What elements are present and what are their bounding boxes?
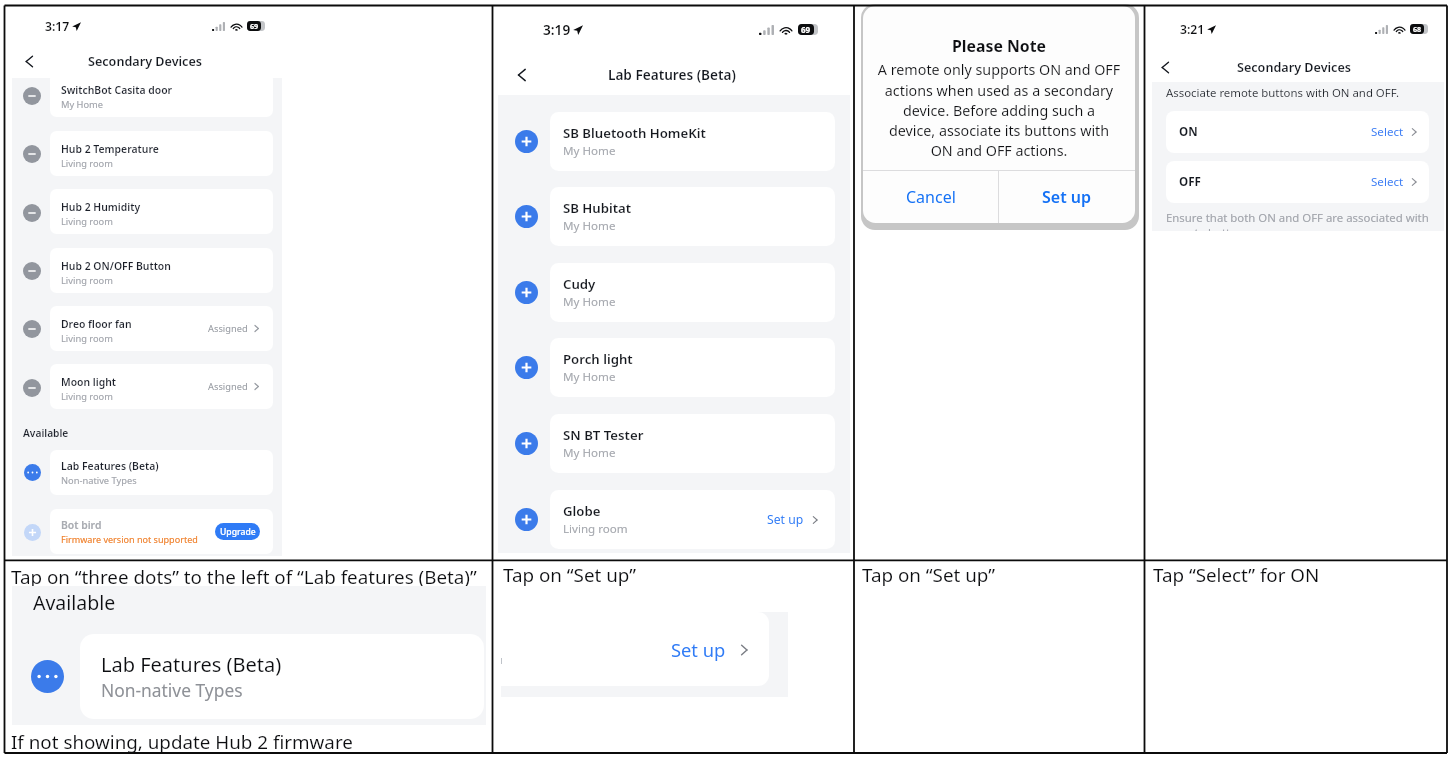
staticText: My Home — [563, 445, 616, 461]
staticText: Hub 2 ON/OFF Button — [61, 259, 171, 273]
staticText: Porch light — [563, 350, 633, 368]
staticText: My Home — [563, 294, 616, 310]
staticText: SwitchBot Casita door — [61, 83, 173, 97]
staticText: Globe — [563, 502, 601, 520]
staticText: Set up — [767, 511, 804, 528]
button[interactable]: Remove device — [23, 204, 41, 222]
staticText: Hub 2 Temperature — [61, 142, 159, 156]
button[interactable]: Bot bird — [50, 509, 273, 554]
staticText: Hub 2 Humidity — [61, 200, 141, 214]
staticText: Ensure that both ON and OFF are associat… — [1166, 210, 1429, 231]
staticText: Non-native Types — [61, 474, 137, 487]
button[interactable]: Remove device — [23, 262, 41, 280]
staticText: Tap “Select” for ON — [1153, 562, 1320, 588]
button[interactable]: Hub 2 Temperature — [50, 131, 273, 176]
staticText: My Home — [563, 218, 616, 234]
button[interactable]: Set up — [501, 612, 769, 686]
button[interactable]: ON — [1166, 111, 1429, 153]
staticText: Available — [33, 589, 116, 616]
staticText: SB Hubitat — [563, 199, 632, 217]
staticText: Upgrade — [220, 526, 256, 538]
staticText: 3:19 — [543, 20, 571, 39]
staticText: Living room — [61, 274, 113, 287]
staticText: Assigned — [208, 322, 248, 335]
staticText: Living room — [61, 332, 113, 345]
button[interactable]: Add device — [515, 130, 538, 153]
staticText: 3:21 — [1180, 21, 1205, 38]
button[interactable]: Globe — [550, 490, 835, 549]
button[interactable]: Add device — [515, 281, 538, 304]
staticText: Associate remote buttons with ON and OFF… — [1166, 85, 1399, 101]
staticText: If not showing, update Hub 2 firmware — [11, 729, 353, 755]
button[interactable]: Back — [20, 52, 38, 70]
button[interactable]: Moon light — [50, 364, 273, 409]
staticText: My Home — [563, 369, 616, 385]
button[interactable]: Porch light — [550, 338, 835, 397]
staticText: My Home — [563, 143, 616, 159]
staticText: SB Bluetooth HomeKit — [563, 124, 706, 142]
staticText: My Home — [61, 98, 104, 111]
button[interactable]: Lab Features (Beta) — [50, 450, 273, 495]
button[interactable]: SN BT Tester — [550, 414, 835, 473]
staticText: Bot bird — [61, 518, 102, 532]
button[interactable]: SB Hubitat — [550, 187, 835, 246]
staticText: Select — [1371, 174, 1404, 190]
staticText: Living room — [61, 215, 113, 228]
button[interactable]: Add device — [515, 356, 538, 379]
button[interactable]: SB Bluetooth HomeKit — [550, 112, 835, 171]
staticText: 69 — [250, 21, 259, 31]
staticText: Lab Features (Beta) — [101, 651, 282, 678]
staticText: Moon light — [61, 375, 117, 389]
staticText: ON — [1179, 124, 1198, 140]
staticText: A remote only supports ON and OFF action… — [863, 60, 1135, 160]
staticText: OFF — [1179, 174, 1201, 190]
button[interactable]: Upgrade — [215, 523, 260, 540]
button[interactable]: Remove device — [23, 145, 41, 163]
button[interactable]: Lab Features (Beta) — [80, 634, 484, 719]
staticText: Assigned — [208, 380, 248, 393]
staticText: Non-native Types — [101, 678, 243, 702]
button[interactable]: Cancel — [863, 171, 998, 223]
staticText: Secondary Devices — [88, 53, 202, 70]
staticText: Living room — [61, 390, 113, 403]
staticText: Tap on “Set up” — [503, 562, 636, 588]
staticText: Secondary Devices — [1237, 59, 1351, 76]
staticText: Tap on “three dots” to the left of “Lab … — [11, 564, 477, 590]
button[interactable]: Cudy — [550, 263, 835, 322]
button[interactable]: Remove device — [23, 320, 41, 338]
button[interactable]: SwitchBot Casita door — [50, 72, 273, 117]
button[interactable]: Set up — [999, 171, 1135, 223]
button[interactable]: Hub 2 Humidity — [50, 189, 273, 234]
staticText: Dreo floor fan — [61, 317, 132, 331]
staticText: Tap on “Set up” — [862, 562, 995, 588]
button[interactable]: More options — [31, 660, 64, 693]
button[interactable]: More options — [24, 464, 41, 481]
staticText: Select — [1371, 124, 1404, 140]
button[interactable]: Add device — [515, 508, 538, 531]
staticText: 69 — [801, 24, 811, 35]
staticText: Set up — [671, 637, 726, 662]
button[interactable]: Add device — [515, 205, 538, 228]
staticText: Please Note — [863, 35, 1135, 57]
button[interactable]: Add device — [24, 524, 41, 541]
staticText: Living room — [563, 521, 628, 537]
button[interactable]: Hub 2 ON/OFF Button — [50, 248, 273, 293]
staticText: Firmware version not supported — [61, 533, 198, 545]
staticText: Cudy — [563, 275, 596, 293]
staticText: 3:17 — [45, 18, 70, 35]
button[interactable]: Dreo floor fan — [50, 306, 273, 351]
staticText: Lab Features (Beta) — [61, 459, 159, 473]
button[interactable]: Remove device — [23, 87, 41, 105]
button[interactable]: OFF — [1166, 161, 1429, 203]
staticText: Living room — [61, 157, 113, 170]
button[interactable]: Back — [1156, 58, 1174, 76]
staticText: Set up — [1042, 186, 1092, 208]
staticText: Lab Features (Beta) — [608, 65, 736, 84]
staticText: SN BT Tester — [563, 426, 644, 444]
staticText: Cancel — [906, 186, 956, 208]
button[interactable]: Add device — [515, 432, 538, 455]
button[interactable]: Remove device — [23, 379, 41, 397]
staticText: Available — [23, 426, 69, 440]
button[interactable]: Back — [512, 65, 531, 84]
staticText: 68 — [1413, 24, 1422, 34]
